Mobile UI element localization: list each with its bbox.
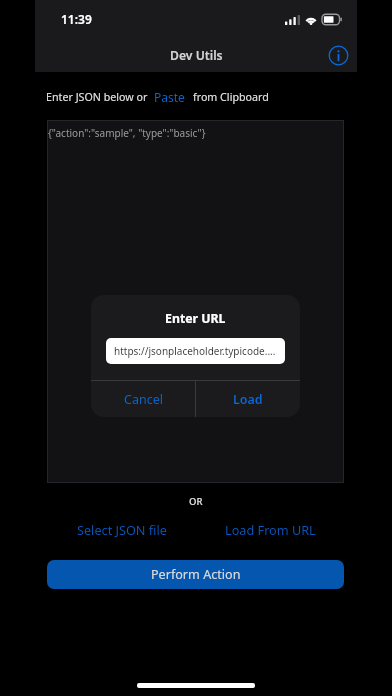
button[interactable]: {"action":"sample", "type":"basic"} [48,121,343,482]
staticText: Perform Action [151,566,241,583]
staticText: Load [233,391,263,408]
button[interactable]: Select JSON file [77,521,167,538]
button[interactable]: Info [328,45,349,66]
button[interactable]: https://jsonplaceholder.typicode.... [106,338,285,364]
staticText: Enter JSON below or [46,90,148,105]
staticText: Enter URL [165,310,226,327]
staticText: https://jsonplaceholder.typicode.... [114,344,276,358]
button[interactable]: Cancel [91,381,195,417]
staticText: {"action":"sample", "type":"basic"} [48,126,206,140]
staticText: Dev Utils [170,47,223,64]
button[interactable]: Paste [154,89,185,105]
button[interactable]: Load From URL [225,521,316,538]
staticText: Cancel [124,391,163,408]
button[interactable]: Perform Action [47,560,344,589]
staticText: 11:39 [61,11,92,27]
staticText: from Clipboard [193,90,269,105]
button[interactable]: Load [196,381,300,417]
staticText: OR [189,495,203,508]
